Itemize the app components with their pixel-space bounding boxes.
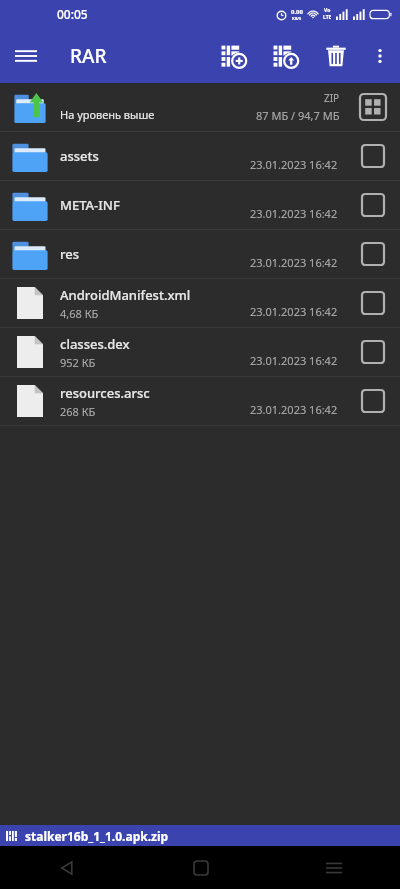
staticText: 23.01.2023 16:42 <box>250 304 338 319</box>
staticText: 00:05 <box>57 6 88 22</box>
staticText: 268 КБ <box>60 404 96 419</box>
staticText: ZIP <box>324 91 340 105</box>
staticText: resources.arsc <box>60 384 150 402</box>
button[interactable]: Select <box>346 328 400 376</box>
button[interactable]: Extract <box>260 30 312 82</box>
staticText: 23.01.2023 16:42 <box>250 157 338 172</box>
staticText: 952 КБ <box>60 355 96 370</box>
staticText: 0.00 <box>291 8 303 16</box>
staticText: RAR <box>70 43 107 69</box>
staticText: 23.01.2023 16:42 <box>250 402 338 417</box>
button[interactable]: Select <box>346 279 400 327</box>
button[interactable]: Home <box>134 846 267 889</box>
button[interactable]: Select <box>346 377 400 425</box>
button[interactable]: res <box>0 230 400 278</box>
button[interactable]: Menu <box>0 30 52 82</box>
staticText: На уровень выше <box>60 107 256 122</box>
staticText: Vo <box>324 7 331 14</box>
button[interactable]: Add to archive <box>208 30 260 82</box>
button[interactable]: Recent apps <box>267 846 400 889</box>
staticText: 87 МБ / 94,7 МБ <box>256 108 340 123</box>
staticText: 23.01.2023 16:42 <box>250 255 338 270</box>
button[interactable]: More options <box>360 36 400 76</box>
staticText: KB/S <box>292 16 302 21</box>
button[interactable]: resources.arsc <box>0 377 400 425</box>
staticText: LTE <box>323 14 332 21</box>
button[interactable]: Select <box>346 230 400 278</box>
button[interactable]: Back <box>0 846 134 889</box>
staticText: 23.01.2023 16:42 <box>250 206 338 221</box>
button[interactable]: Delete <box>312 32 360 80</box>
staticText: 4,68 КБ <box>60 306 99 321</box>
staticText: META-INF <box>60 196 250 214</box>
staticText: AndroidManifest.xml <box>60 286 191 304</box>
staticText: assets <box>60 147 250 165</box>
staticText: stalker16b_1_1.0.apk.zip <box>25 828 169 844</box>
button[interactable]: View mode <box>346 83 400 131</box>
button[interactable]: Select <box>346 132 400 180</box>
button[interactable]: AndroidManifest.xml <box>0 279 400 327</box>
button[interactable]: stalker16b_1_1.0.apk.zip <box>0 825 400 846</box>
button[interactable]: На уровень выше <box>0 83 400 131</box>
button[interactable]: Select <box>346 181 400 229</box>
staticText: res <box>60 245 250 263</box>
button[interactable]: classes.dex <box>0 328 400 376</box>
button[interactable]: META-INF <box>0 181 400 229</box>
staticText: 23.01.2023 16:42 <box>250 353 338 368</box>
button[interactable]: assets <box>0 132 400 180</box>
staticText: classes.dex <box>60 335 130 353</box>
